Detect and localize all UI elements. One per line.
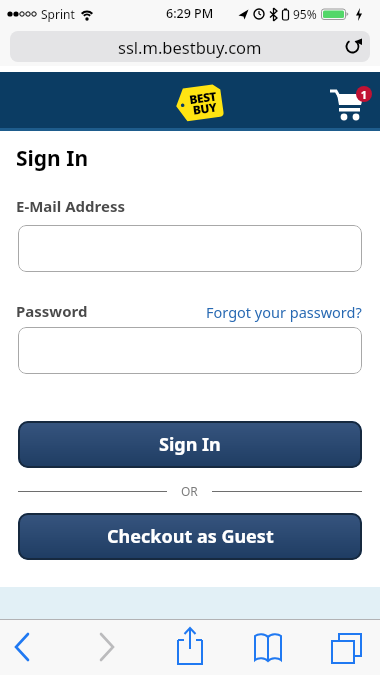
staticText: Password	[16, 301, 88, 321]
button[interactable]	[5, 629, 41, 665]
staticText: Sprint	[41, 6, 75, 22]
button[interactable]	[18, 225, 362, 272]
staticText: BEST	[188, 88, 217, 107]
button[interactable]	[88, 629, 124, 665]
button[interactable]	[170, 625, 210, 669]
button[interactable]	[18, 327, 362, 374]
staticText: OR	[181, 483, 198, 499]
button[interactable]: 1	[324, 80, 374, 124]
staticText: 6:29 PM	[166, 5, 214, 22]
button[interactable]	[248, 627, 288, 667]
staticText: Sign In	[16, 144, 89, 173]
button[interactable]: ssl.m.bestbuy.com	[10, 31, 370, 62]
staticText: 95%	[293, 6, 317, 22]
staticText: E-Mail Address	[16, 196, 125, 216]
staticText: Checkout as Guest	[107, 524, 274, 549]
staticText: 1	[360, 87, 368, 102]
button[interactable]: Sign In	[18, 421, 362, 468]
button[interactable]: Checkout as Guest	[18, 513, 362, 560]
button[interactable]	[326, 627, 366, 667]
staticText: ssl.m.bestbuy.com	[118, 36, 262, 58]
button[interactable]: BEST	[174, 83, 224, 123]
staticText: Forgot your password?	[206, 302, 362, 322]
staticText: BUY	[192, 99, 218, 118]
button[interactable]: Forgot your password?	[0, 302, 362, 322]
staticText: Sign In	[159, 432, 221, 457]
